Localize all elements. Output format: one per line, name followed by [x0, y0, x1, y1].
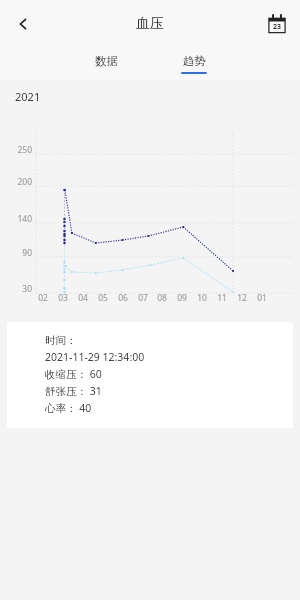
staticText: 07	[132, 292, 154, 304]
staticText: 30	[6, 283, 32, 295]
button[interactable]: Calendar	[260, 7, 294, 41]
staticText: 04	[72, 292, 94, 304]
button[interactable]: 数据	[66, 47, 146, 80]
staticText: 140	[6, 213, 32, 225]
staticText: 心率： 40	[45, 401, 92, 415]
staticText: 10	[191, 292, 213, 304]
staticText: 收缩压： 60	[45, 367, 102, 381]
staticText: 08	[151, 292, 173, 304]
staticText: 血压	[136, 15, 164, 33]
staticText: 06	[112, 292, 134, 304]
staticText: 数据	[95, 54, 118, 68]
staticText: 01	[251, 292, 273, 304]
button[interactable]: 趋势	[154, 47, 234, 80]
staticText: 12	[231, 292, 253, 304]
button[interactable]: Back	[3, 4, 43, 44]
staticText: 09	[171, 292, 193, 304]
button[interactable]: 时间：	[7, 322, 293, 428]
staticText: 250	[6, 144, 32, 156]
staticText: 时间：	[45, 334, 77, 347]
staticText: 03	[52, 292, 74, 304]
staticText: 90	[6, 247, 32, 259]
staticText: 2021-11-29 12:34:00	[45, 350, 145, 364]
staticText: 02	[32, 292, 54, 304]
staticText: 11	[211, 292, 233, 304]
staticText: 趋势	[183, 54, 206, 68]
staticText: 2021	[15, 89, 41, 104]
staticText: 23	[273, 22, 282, 32]
staticText: 200	[6, 176, 32, 188]
staticText: 舒张压： 31	[45, 384, 102, 398]
staticText: 05	[92, 292, 114, 304]
